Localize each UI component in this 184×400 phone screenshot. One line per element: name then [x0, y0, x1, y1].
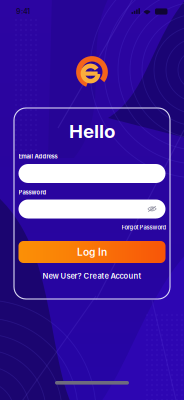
staticText: Password [18, 189, 46, 196]
staticText: Hello [69, 120, 115, 143]
staticText: Email Address [18, 153, 57, 160]
button[interactable]: New User? Create Account [14, 270, 170, 282]
staticText: Log In [77, 246, 107, 258]
staticText: Forgot Password [121, 224, 166, 231]
button[interactable]: Forgot Password [14, 222, 166, 233]
staticText: New User? Create Account [42, 271, 141, 281]
button[interactable]: Log In [18, 241, 165, 263]
staticText: 9:41 [16, 7, 30, 16]
